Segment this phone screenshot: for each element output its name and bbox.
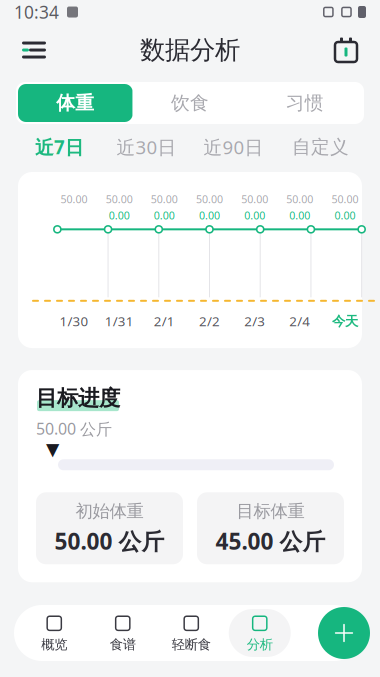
staticText: 50.00 <box>241 192 268 206</box>
staticText: 50.00 <box>196 192 223 206</box>
staticText: ▼ <box>46 439 59 459</box>
button[interactable]: 菜单 <box>12 28 56 72</box>
button[interactable]: 近90日 <box>190 130 277 164</box>
staticText: 目标体重 <box>236 501 304 522</box>
staticText: 10:34 <box>14 0 59 23</box>
staticText: 概览 <box>41 636 67 653</box>
staticText: 0.00 <box>154 208 175 222</box>
staticText: 1/31 <box>105 312 134 330</box>
button[interactable]: 分析 <box>229 609 291 657</box>
button[interactable]: 轻断食 <box>160 609 222 657</box>
button[interactable]: 饮食 <box>133 84 247 122</box>
button[interactable]: 食谱 <box>92 609 154 657</box>
staticText: 近90日 <box>203 135 263 159</box>
staticText: 2/4 <box>289 312 310 330</box>
staticText: 近30日 <box>116 135 176 159</box>
staticText: 0.00 <box>289 208 310 222</box>
staticText: 45.00 公斤 <box>215 526 325 556</box>
staticText: 体重 <box>56 91 94 114</box>
staticText: 初始体重 <box>75 501 143 522</box>
staticText: 饮食 <box>171 91 209 114</box>
staticText: 50.00 <box>61 192 88 206</box>
staticText: 数据分析 <box>140 34 240 65</box>
staticText: 2/3 <box>244 312 265 330</box>
staticText: 50.00 公斤 <box>36 418 112 439</box>
staticText: 目标进度 <box>36 385 120 411</box>
button[interactable]: 习惯 <box>247 84 362 122</box>
staticText: 0.00 <box>109 208 130 222</box>
staticText: 0.00 <box>199 208 220 222</box>
staticText: 0.00 <box>244 208 265 222</box>
staticText: 食谱 <box>110 636 136 653</box>
staticText: 50.00 公斤 <box>54 526 164 556</box>
button[interactable]: 添加 <box>318 607 370 659</box>
button[interactable]: 近7日 <box>16 130 103 164</box>
staticText: 轻断食 <box>172 636 211 653</box>
staticText: 自定义 <box>292 135 349 158</box>
staticText: 50.00 <box>286 192 313 206</box>
staticText: 50.00 <box>151 192 178 206</box>
staticText: 习惯 <box>286 91 324 114</box>
staticText: 1/30 <box>60 312 89 330</box>
staticText: 2/2 <box>199 312 220 330</box>
button[interactable]: 自定义 <box>277 130 364 164</box>
staticText: 50.00 <box>106 192 133 206</box>
button[interactable]: 日历 <box>324 28 368 72</box>
button[interactable]: 近30日 <box>103 130 190 164</box>
button[interactable]: 体重 <box>18 84 133 122</box>
staticText: 分析 <box>247 636 273 653</box>
staticText: 今天 <box>332 313 358 329</box>
staticText: 近7日 <box>35 135 84 159</box>
staticText: 50.00 <box>331 192 358 206</box>
staticText: 2/1 <box>154 312 175 330</box>
button[interactable]: 概览 <box>23 609 85 657</box>
staticText: 0.00 <box>334 208 355 222</box>
